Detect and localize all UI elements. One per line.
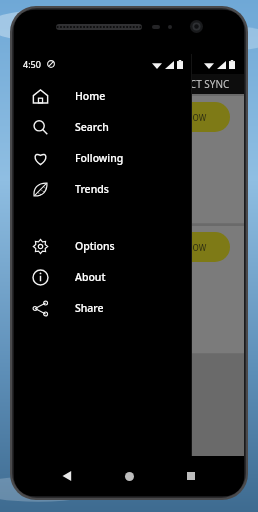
button[interactable]: GO SHOW xyxy=(144,232,230,262)
staticText: Dogs xyxy=(26,284,56,300)
other: Trends xyxy=(30,179,50,199)
staticText: December 15, xyxy=(26,316,85,328)
other: Search xyxy=(30,117,50,137)
button[interactable]: Back xyxy=(54,463,80,489)
button[interactable]: Recent apps xyxy=(178,463,204,489)
button[interactable]: Home xyxy=(14,80,192,111)
staticText: Home xyxy=(75,89,106,103)
staticText: Every Saturday, xyxy=(26,154,91,166)
other: Home xyxy=(30,86,50,106)
button[interactable]: Share xyxy=(14,292,192,323)
staticText: Trends xyxy=(75,182,109,196)
button[interactable]: Trends xyxy=(14,173,192,204)
staticText: Search xyxy=(75,120,109,134)
other: Options xyxy=(30,236,50,256)
staticText: SELECT SYNC xyxy=(168,77,230,91)
button[interactable]: Search xyxy=(14,111,192,142)
staticText: About xyxy=(75,270,106,284)
staticText: Options xyxy=(75,239,115,253)
button[interactable]: Home xyxy=(116,463,142,489)
button[interactable]: Following xyxy=(14,142,192,173)
other: About xyxy=(30,267,50,287)
staticText: GO SHOW xyxy=(168,242,207,253)
staticText: 4:50 xyxy=(23,58,41,70)
staticText: Share xyxy=(75,301,104,315)
staticText: GO SHOW xyxy=(168,112,207,123)
staticText: Following xyxy=(75,151,124,165)
staticText: Sunday, xyxy=(26,302,60,314)
button[interactable]: About xyxy=(14,261,192,292)
button[interactable]: GO SHOW xyxy=(144,102,230,132)
staticText: 4:50 xyxy=(23,58,41,70)
other: Following xyxy=(30,148,50,168)
other: Share xyxy=(30,298,50,318)
button[interactable]: Options xyxy=(14,230,192,261)
